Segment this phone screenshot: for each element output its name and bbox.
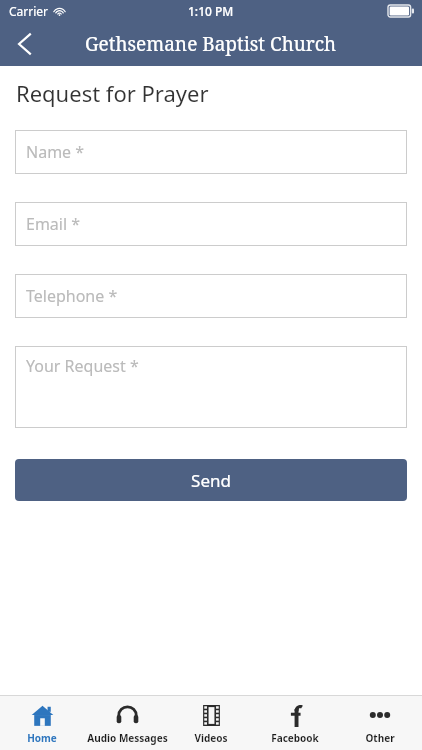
staticText: Other [365, 731, 395, 745]
button[interactable]: Telephone * [15, 274, 407, 318]
staticText: Videos [194, 731, 228, 745]
staticText: Home [27, 731, 57, 745]
button[interactable]: Home [0, 696, 84, 750]
staticText: 1:10 PM [188, 3, 234, 19]
staticText: Your Request * [26, 355, 139, 377]
staticText: Send [191, 469, 231, 492]
staticText: Email * [26, 213, 81, 235]
button[interactable]: Send [15, 459, 407, 501]
button[interactable]: Facebook [253, 696, 337, 750]
staticText: Facebook [271, 731, 319, 745]
button[interactable]: Back [0, 22, 48, 66]
staticText: Request for Prayer [16, 78, 209, 108]
staticText: Name * [26, 141, 85, 163]
button[interactable]: Videos [169, 696, 253, 750]
button[interactable]: Audio Messages [85, 696, 169, 750]
staticText: Carrier [9, 3, 49, 19]
button[interactable]: Email * [15, 202, 407, 246]
button[interactable]: Other [338, 696, 422, 750]
staticText: Audio Messages [87, 731, 168, 745]
staticText: Telephone * [26, 285, 118, 307]
button[interactable]: Your Request * [15, 346, 407, 428]
button[interactable]: Name * [15, 130, 407, 174]
staticText: Gethsemane Baptist Church [85, 31, 337, 57]
